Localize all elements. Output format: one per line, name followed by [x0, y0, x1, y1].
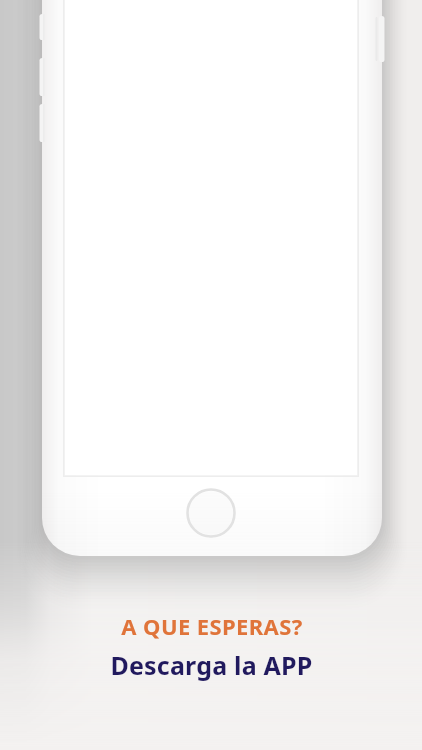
- staticText: Descarga la APP: [110, 648, 313, 682]
- staticText: A QUE ESPERAS?: [121, 611, 303, 641]
- button[interactable]: A QUE ESPERAS?: [94, 611, 329, 682]
